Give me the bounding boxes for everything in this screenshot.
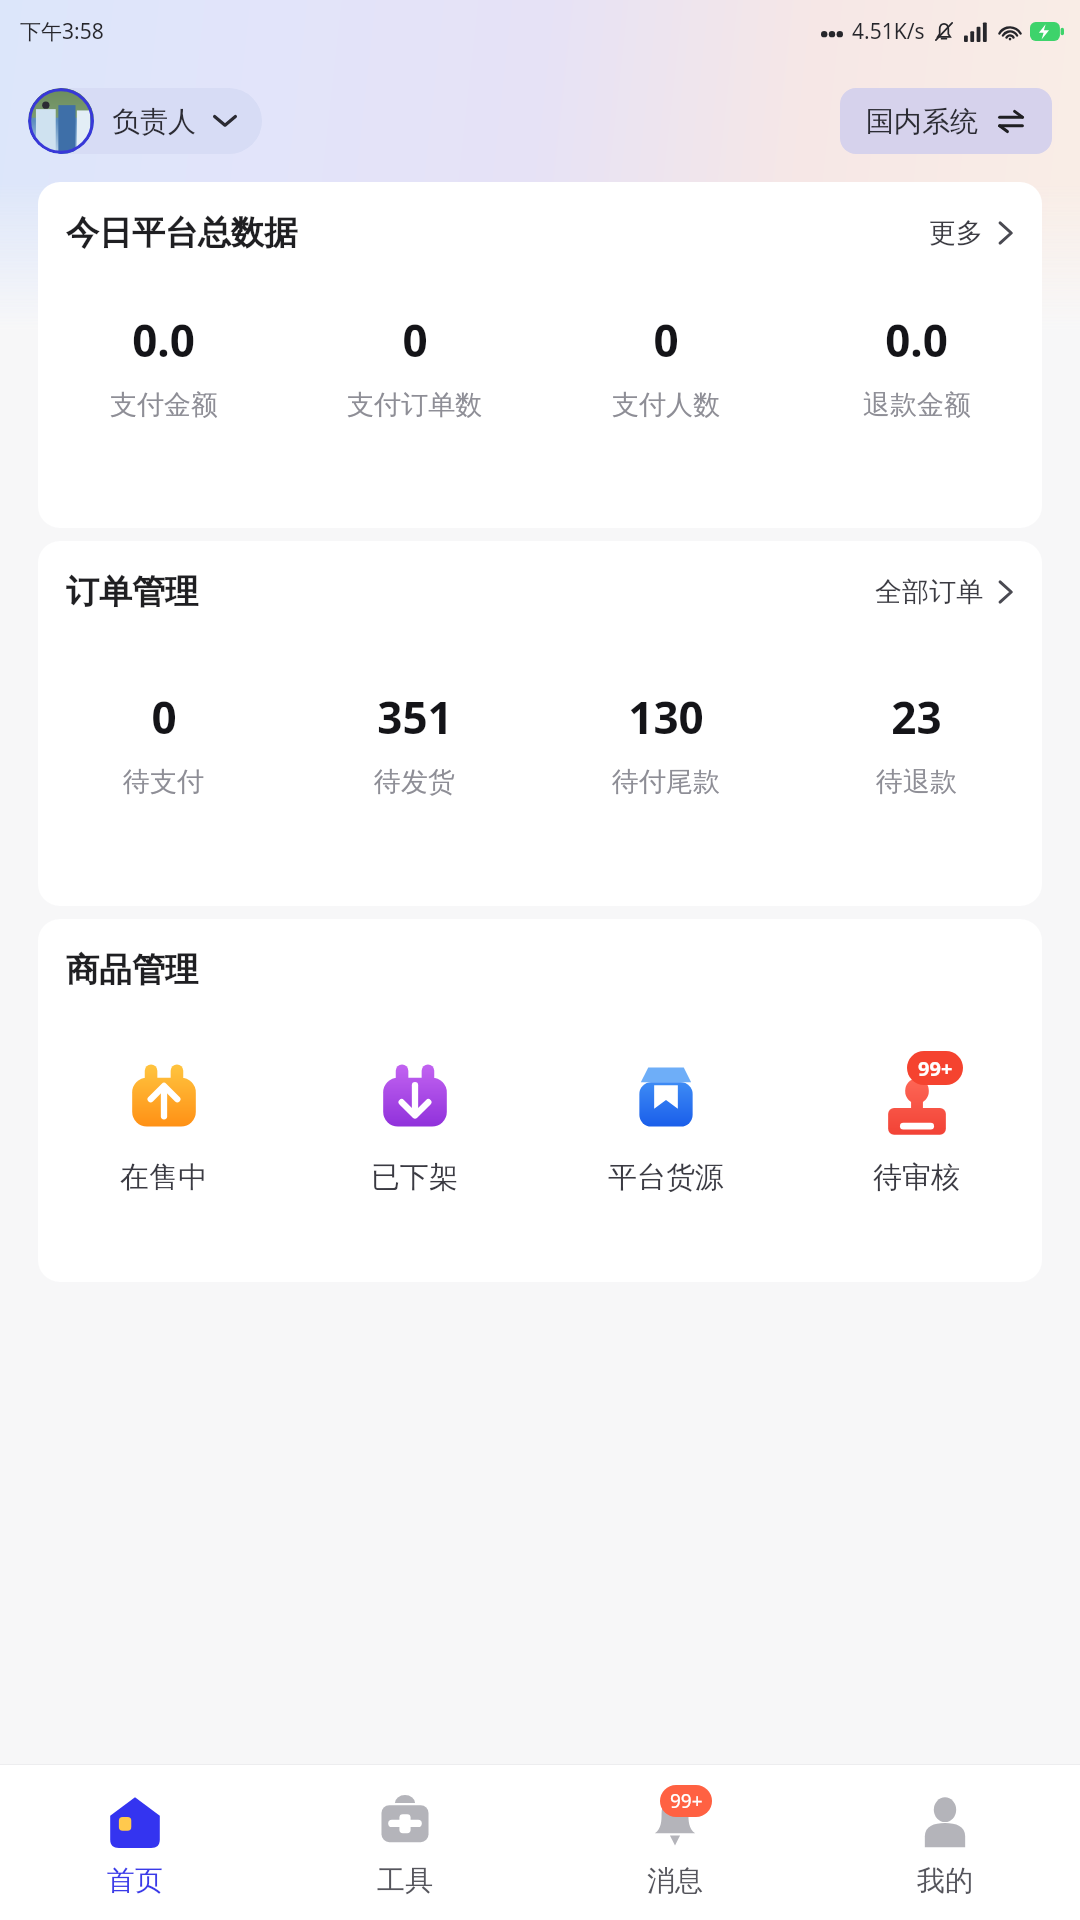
- staticText: 今日平台总数据: [66, 212, 297, 254]
- staticText: 待发货: [374, 765, 455, 799]
- staticText: 退款金额: [863, 388, 971, 422]
- staticText: 0: [151, 687, 177, 747]
- staticText: 待退款: [876, 765, 957, 799]
- staticText: 130: [628, 687, 704, 747]
- button[interactable]: 在售中: [38, 1049, 289, 1196]
- staticText: 在售中: [120, 1159, 207, 1196]
- staticText: 支付金额: [110, 388, 218, 422]
- staticText: 我的: [917, 1863, 973, 1898]
- staticText: 更多: [929, 216, 983, 250]
- button[interactable]: 更多: [925, 212, 1018, 254]
- button[interactable]: 0.0: [38, 310, 289, 422]
- button[interactable]: 工具: [270, 1765, 540, 1920]
- staticText: 国内系统: [866, 104, 978, 139]
- staticText: 351: [377, 687, 453, 747]
- staticText: 支付订单数: [347, 388, 482, 422]
- button[interactable]: 99+: [540, 1765, 810, 1920]
- staticText: 0: [402, 310, 428, 370]
- button[interactable]: 23: [791, 687, 1042, 799]
- button[interactable]: 0: [38, 687, 289, 799]
- staticText: 平台货源: [608, 1159, 724, 1196]
- staticText: 待付尾款: [612, 765, 720, 799]
- button[interactable]: 负责人: [28, 88, 262, 154]
- button[interactable]: 99+: [791, 1049, 1042, 1196]
- staticText: 待审核: [873, 1159, 960, 1196]
- button[interactable]: 我的: [810, 1765, 1080, 1920]
- staticText: 4.51K/s: [852, 17, 925, 46]
- staticText: 0.0: [885, 310, 948, 370]
- staticText: 负责人: [112, 104, 196, 139]
- button[interactable]: 已下架: [289, 1049, 540, 1196]
- staticText: 已下架: [371, 1159, 458, 1196]
- staticText: 99+: [670, 1788, 703, 1814]
- staticText: 支付人数: [612, 388, 720, 422]
- staticText: 下午3:58: [20, 17, 104, 46]
- button[interactable]: 130: [540, 687, 791, 799]
- button[interactable]: 国内系统: [840, 88, 1052, 154]
- button[interactable]: 0: [289, 310, 540, 422]
- button[interactable]: 0.0: [791, 310, 1042, 422]
- staticText: 首页: [107, 1863, 163, 1898]
- staticText: 0.0: [132, 310, 195, 370]
- staticText: 0: [653, 310, 679, 370]
- button[interactable]: 351: [289, 687, 540, 799]
- button[interactable]: 0: [540, 310, 791, 422]
- button[interactable]: 首页: [0, 1765, 270, 1920]
- staticText: 待支付: [123, 765, 204, 799]
- staticText: 99+: [918, 1055, 953, 1082]
- button[interactable]: 全部订单: [871, 571, 1018, 613]
- staticText: 订单管理: [66, 571, 198, 613]
- staticText: 商品管理: [66, 949, 198, 991]
- staticText: 23: [891, 687, 942, 747]
- staticText: 全部订单: [875, 575, 983, 609]
- staticText: 工具: [377, 1863, 433, 1898]
- staticText: 消息: [647, 1863, 703, 1898]
- button[interactable]: 平台货源: [540, 1049, 791, 1196]
